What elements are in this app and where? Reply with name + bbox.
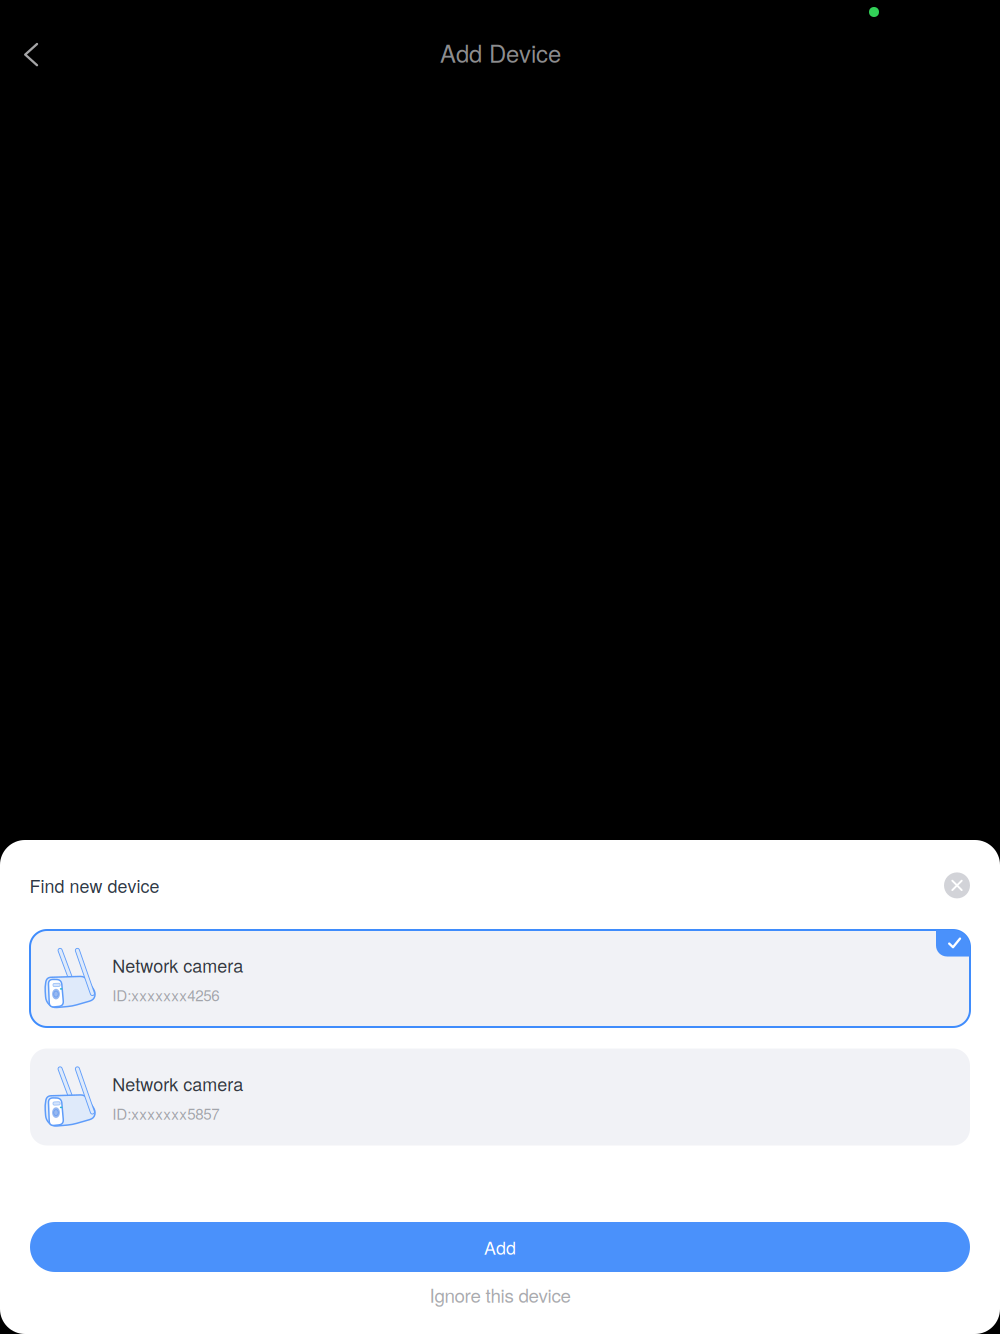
- button[interactable]: Network camera: [30, 1048, 970, 1145]
- staticText: ID:xxxxxxx5857: [112, 1102, 219, 1124]
- staticText: Find new device: [30, 872, 160, 898]
- button[interactable]: Ignore this device: [300, 1273, 700, 1317]
- staticText: ID:xxxxxxx4256: [112, 984, 219, 1006]
- button[interactable]: Close: [935, 863, 979, 907]
- button[interactable]: Add: [30, 1222, 970, 1272]
- staticText: Add: [484, 1234, 516, 1260]
- button[interactable]: Back: [7, 31, 55, 79]
- staticText: Network camera: [112, 952, 243, 978]
- button[interactable]: Network camera: [30, 930, 970, 1027]
- staticText: Network camera: [112, 1070, 243, 1096]
- staticText: Add Device: [440, 35, 561, 69]
- staticText: Ignore this device: [429, 1281, 570, 1308]
